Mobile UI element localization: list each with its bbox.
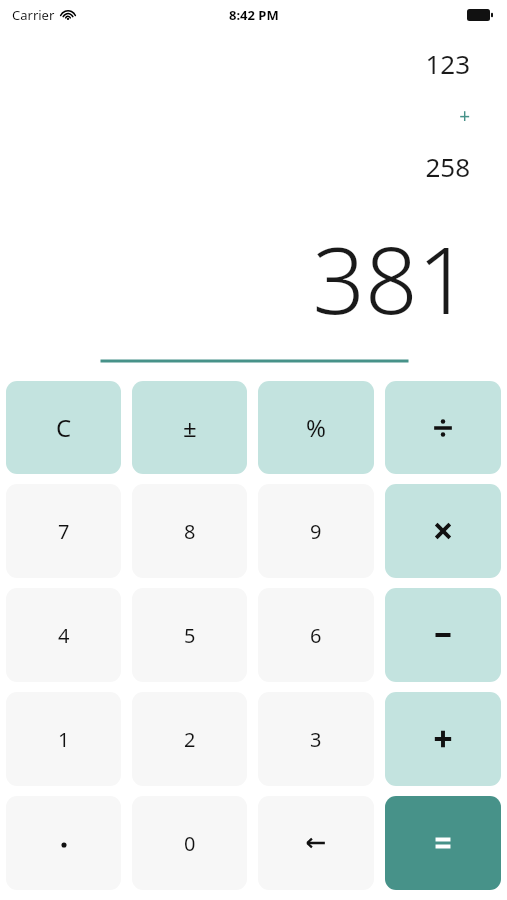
- staticText: 9: [310, 518, 322, 545]
- button[interactable]: 9: [258, 484, 374, 578]
- button[interactable]: 5: [132, 588, 247, 682]
- button[interactable]: 6: [258, 588, 374, 682]
- button[interactable]: Backspace: [258, 796, 374, 890]
- staticText: 2: [184, 726, 196, 753]
- button[interactable]: Minus: [385, 588, 501, 682]
- button[interactable]: 3: [258, 692, 374, 786]
- button[interactable]: %: [258, 381, 374, 474]
- button[interactable]: 4: [6, 588, 121, 682]
- staticText: 7: [58, 518, 70, 545]
- staticText: 0: [184, 830, 196, 857]
- staticText: 381: [312, 216, 470, 341]
- staticText: %: [306, 411, 326, 444]
- staticText: 123: [425, 46, 470, 81]
- button[interactable]: 0: [132, 796, 247, 890]
- button[interactable]: 8: [132, 484, 247, 578]
- button[interactable]: 7: [6, 484, 121, 578]
- button[interactable]: Plus: [385, 692, 501, 786]
- staticText: Carrier: [12, 6, 55, 24]
- staticText: 4: [58, 622, 70, 649]
- staticText: +: [459, 103, 470, 129]
- button[interactable]: Decimal point: [6, 796, 121, 890]
- staticText: 3: [310, 726, 322, 753]
- staticText: 8:42 PM: [229, 6, 279, 24]
- staticText: 258: [425, 149, 470, 184]
- button[interactable]: C: [6, 381, 121, 474]
- staticText: ±: [183, 411, 197, 444]
- staticText: 8: [184, 518, 196, 545]
- staticText: C: [56, 411, 72, 444]
- button[interactable]: Divide: [385, 381, 501, 474]
- staticText: 1: [58, 726, 70, 753]
- staticText: 6: [310, 622, 322, 649]
- button[interactable]: Multiply: [385, 484, 501, 578]
- button[interactable]: ±: [132, 381, 247, 474]
- staticText: 5: [184, 622, 196, 649]
- button[interactable]: Equals: [385, 796, 501, 890]
- button[interactable]: 1: [6, 692, 121, 786]
- button[interactable]: 2: [132, 692, 247, 786]
